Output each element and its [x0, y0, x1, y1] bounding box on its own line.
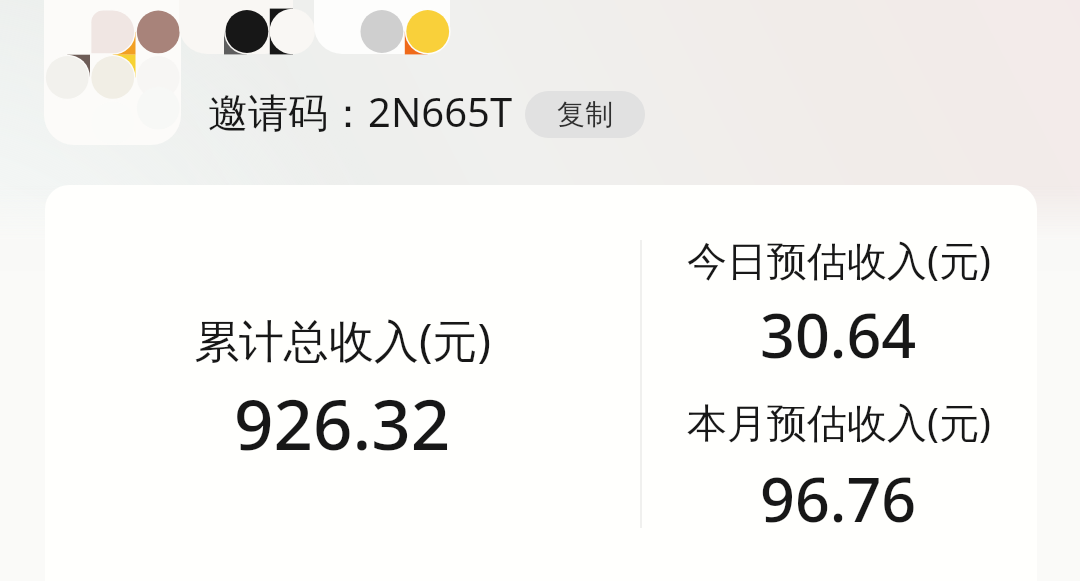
staticText: 累计总收入(元)	[194, 309, 492, 370]
other: Avatars	[0, 0, 1080, 581]
staticText: 30.64	[760, 293, 917, 376]
staticText: 926.32	[234, 376, 451, 470]
staticText: 今日预估收入(元)	[687, 232, 991, 287]
staticText: 邀请码：2N665T	[208, 84, 513, 139]
staticText: 复制	[557, 97, 613, 132]
button[interactable]: 复制	[525, 91, 645, 138]
staticText: 96.76	[760, 457, 917, 540]
staticText: 本月预估收入(元)	[687, 394, 991, 449]
